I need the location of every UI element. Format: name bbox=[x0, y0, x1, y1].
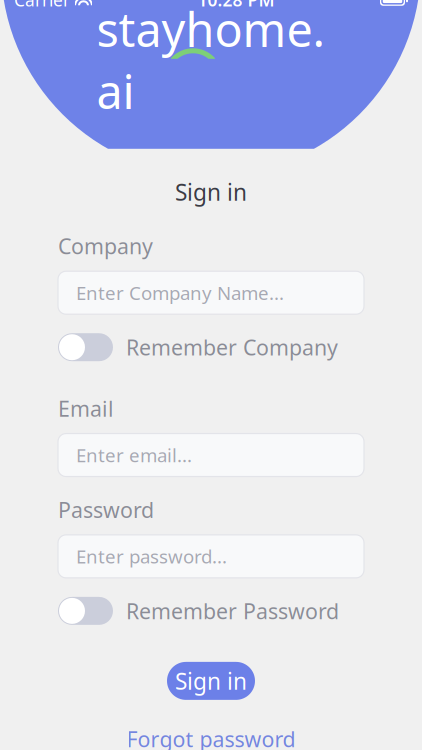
button[interactable]: Enter email... bbox=[58, 434, 364, 477]
staticText: 10:28 PM bbox=[197, 0, 274, 11]
staticText: Sign in bbox=[175, 177, 247, 207]
button[interactable]: Forgot password bbox=[126, 725, 295, 750]
staticText: Email bbox=[58, 394, 114, 422]
button[interactable]: Sign in bbox=[167, 662, 255, 700]
staticText: Enter password... bbox=[76, 544, 227, 569]
staticText: Forgot password bbox=[126, 725, 295, 750]
button[interactable]: Enter password... bbox=[58, 535, 364, 578]
button[interactable]: Remember Password bbox=[58, 596, 364, 626]
staticText: Carrier bbox=[14, 0, 70, 11]
staticText: Enter email... bbox=[76, 443, 192, 467]
staticText: Remember Password bbox=[126, 597, 339, 625]
staticText: Password bbox=[58, 496, 154, 524]
button[interactable]: Enter Company Name... bbox=[58, 271, 364, 314]
staticText: stayhome.ai bbox=[96, 0, 325, 122]
staticText: Company bbox=[58, 232, 153, 260]
staticText: Enter Company Name... bbox=[76, 280, 284, 305]
button[interactable]: Remember Company bbox=[58, 332, 364, 362]
staticText: Remember Company bbox=[126, 333, 338, 361]
staticText: Sign in bbox=[175, 666, 247, 696]
